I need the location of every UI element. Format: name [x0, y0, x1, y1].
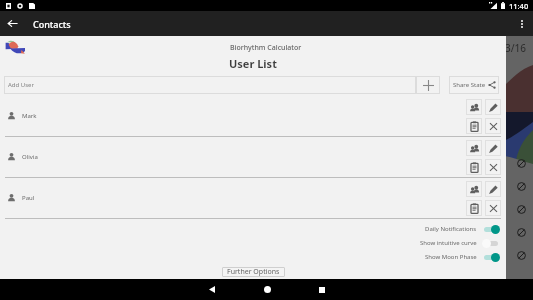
staticText: 11:40: [509, 1, 529, 11]
staticText: Olivia: [22, 153, 38, 161]
staticText: Contacts: [33, 18, 71, 30]
button[interactable]: Further Options: [222, 267, 285, 277]
button[interactable]: Back: [193, 279, 231, 300]
button[interactable]: Copy: [466, 118, 482, 134]
staticText: Further Options: [227, 267, 280, 277]
staticText: Daily Notifications: [425, 225, 477, 233]
staticText: Mark: [22, 112, 37, 120]
staticText: Add User: [8, 81, 34, 89]
button[interactable]: Copy: [466, 200, 482, 216]
staticText: Paul: [22, 194, 35, 202]
staticText: User List: [229, 56, 277, 71]
button[interactable]: Edit: [485, 181, 501, 197]
staticText: Show intuitive curve: [420, 239, 477, 247]
button[interactable]: Mark: [0, 96, 506, 136]
button[interactable]: Back: [0, 11, 25, 36]
button[interactable]: Delete: [485, 118, 501, 134]
button[interactable]: More options: [511, 13, 533, 35]
button[interactable]: Copy: [466, 159, 482, 175]
button[interactable]: Add User: [4, 76, 416, 94]
button[interactable]: Delete: [485, 200, 501, 216]
staticText: Show Moon Phase: [425, 253, 477, 261]
button[interactable]: Compare: [466, 140, 482, 156]
button[interactable]: Edit: [485, 99, 501, 115]
button[interactable]: Compare: [466, 99, 482, 115]
button[interactable]: Show Moon Phase: [0, 250, 506, 264]
staticText: Share State: [453, 81, 486, 89]
button[interactable]: Recents: [303, 279, 341, 300]
button[interactable]: Compare: [466, 181, 482, 197]
button[interactable]: Paul: [0, 178, 506, 218]
button[interactable]: Delete: [485, 159, 501, 175]
button[interactable]: Olivia: [0, 137, 506, 177]
button[interactable]: Show intuitive curve: [0, 236, 506, 250]
button[interactable]: Add user: [416, 76, 440, 94]
staticText: 3/16: [505, 41, 527, 55]
button[interactable]: Daily Notifications: [0, 222, 506, 236]
button[interactable]: Edit: [485, 140, 501, 156]
button[interactable]: Home: [248, 279, 286, 300]
button[interactable]: Share State: [449, 76, 499, 94]
staticText: Biorhythm Calculator: [230, 43, 302, 53]
